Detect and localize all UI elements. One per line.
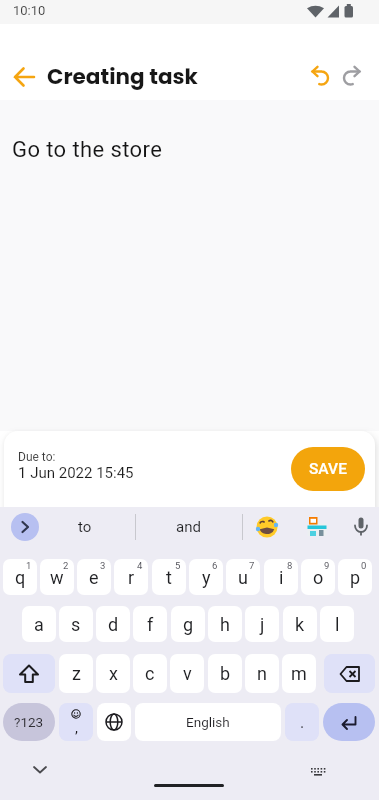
button[interactable]: Due to: bbox=[18, 450, 134, 482]
staticText: k bbox=[295, 614, 305, 635]
staticText: a bbox=[34, 614, 44, 635]
staticText: English bbox=[186, 714, 230, 730]
button[interactable]: d bbox=[96, 606, 130, 642]
button[interactable]: a bbox=[22, 606, 56, 642]
staticText: 1 Jun 2022 15:45 bbox=[18, 464, 134, 482]
staticText: d bbox=[108, 614, 119, 635]
button[interactable] bbox=[306, 762, 330, 782]
staticText: o bbox=[313, 567, 324, 588]
staticText: l bbox=[335, 614, 340, 635]
button[interactable]: s bbox=[59, 606, 93, 642]
staticText: e bbox=[89, 567, 99, 588]
button[interactable] bbox=[30, 763, 50, 777]
staticText: 4 bbox=[137, 560, 143, 571]
button[interactable] bbox=[0, 100, 379, 431]
button[interactable]: and bbox=[150, 507, 226, 547]
button[interactable]: i bbox=[264, 559, 298, 595]
button[interactable]: z bbox=[59, 654, 93, 693]
button[interactable]: e bbox=[77, 559, 111, 595]
button[interactable]: , bbox=[59, 703, 93, 741]
button[interactable]: u bbox=[226, 559, 260, 595]
staticText: u bbox=[238, 567, 248, 588]
staticText: j bbox=[260, 614, 265, 635]
staticText: . bbox=[300, 713, 305, 732]
staticText: x bbox=[109, 663, 118, 684]
staticText: Creating task bbox=[47, 61, 198, 91]
button[interactable] bbox=[305, 515, 329, 539]
staticText: 0 bbox=[361, 560, 367, 571]
staticText: i bbox=[279, 567, 284, 588]
button[interactable]: q bbox=[3, 559, 37, 595]
staticText: 3 bbox=[100, 560, 106, 571]
button[interactable]: English bbox=[135, 703, 281, 741]
button[interactable] bbox=[323, 703, 375, 741]
staticText: ?123 bbox=[14, 714, 44, 730]
button[interactable]: y bbox=[189, 559, 223, 595]
staticText: SAVE bbox=[309, 460, 347, 478]
staticText: Go to the store bbox=[12, 137, 163, 163]
button[interactable]: t bbox=[152, 559, 186, 595]
staticText: 8 bbox=[287, 560, 293, 571]
button[interactable]: r bbox=[114, 559, 148, 595]
button[interactable]: h bbox=[208, 606, 242, 642]
staticText: z bbox=[72, 663, 81, 684]
staticText: q bbox=[15, 567, 26, 588]
button[interactable]: n bbox=[245, 654, 279, 693]
staticText: 7 bbox=[249, 560, 255, 571]
staticText: s bbox=[71, 614, 81, 635]
staticText: and bbox=[176, 518, 201, 536]
staticText: g bbox=[183, 614, 194, 635]
button[interactable]: SAVE bbox=[291, 447, 365, 491]
button[interactable] bbox=[324, 654, 375, 693]
staticText: Due to: bbox=[18, 450, 56, 464]
button[interactable]: l bbox=[320, 606, 354, 642]
staticText: t bbox=[166, 567, 172, 588]
button[interactable]: p bbox=[338, 559, 372, 595]
staticText: b bbox=[220, 663, 231, 684]
button[interactable]: c bbox=[133, 654, 167, 693]
button[interactable]: o bbox=[301, 559, 335, 595]
staticText: p bbox=[350, 567, 361, 588]
button[interactable]: to bbox=[48, 507, 122, 547]
button[interactable]: v bbox=[170, 654, 204, 693]
staticText: v bbox=[183, 663, 192, 684]
button[interactable]: j bbox=[245, 606, 279, 642]
button[interactable] bbox=[255, 515, 279, 539]
staticText: c bbox=[145, 663, 155, 684]
button[interactable]: w bbox=[40, 559, 74, 595]
staticText: 5 bbox=[175, 560, 181, 571]
button[interactable]: g bbox=[171, 606, 205, 642]
button[interactable] bbox=[349, 515, 373, 539]
staticText: f bbox=[147, 614, 154, 635]
button[interactable] bbox=[97, 703, 131, 741]
staticText: y bbox=[202, 567, 211, 588]
staticText: r bbox=[128, 567, 135, 588]
button[interactable]: f bbox=[133, 606, 167, 642]
button[interactable]: m bbox=[282, 654, 316, 693]
staticText: n bbox=[257, 663, 267, 684]
button[interactable]: b bbox=[208, 654, 242, 693]
staticText: w bbox=[50, 567, 64, 588]
staticText: to bbox=[78, 518, 92, 536]
staticText: 2 bbox=[63, 560, 69, 571]
staticText: , bbox=[75, 719, 78, 737]
button[interactable] bbox=[3, 654, 55, 693]
staticText: 1 bbox=[26, 560, 32, 571]
staticText: m bbox=[291, 663, 307, 684]
button[interactable]: . bbox=[285, 703, 319, 741]
staticText: h bbox=[220, 614, 230, 635]
button[interactable] bbox=[302, 55, 338, 99]
staticText: 9 bbox=[324, 560, 330, 571]
staticText: 10:10 bbox=[13, 3, 46, 18]
staticText: 6 bbox=[212, 560, 218, 571]
button[interactable] bbox=[11, 513, 39, 541]
button[interactable]: ?123 bbox=[3, 703, 55, 741]
button[interactable] bbox=[6, 55, 42, 99]
button[interactable]: k bbox=[283, 606, 317, 642]
button[interactable]: x bbox=[96, 654, 130, 693]
button[interactable] bbox=[334, 55, 370, 99]
